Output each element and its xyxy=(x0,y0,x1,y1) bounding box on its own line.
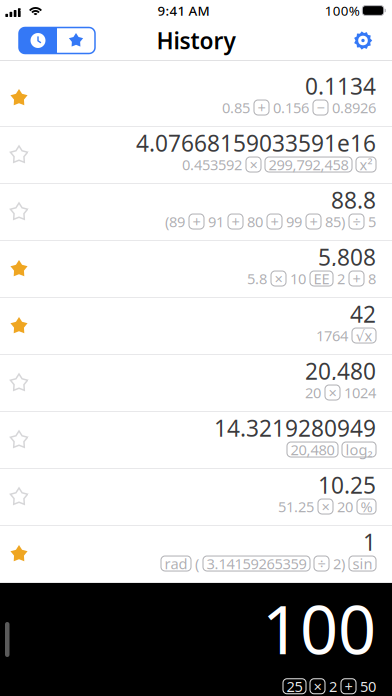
staticText: × xyxy=(313,676,321,696)
staticText: 1024 xyxy=(344,383,376,402)
staticText: (89 xyxy=(165,212,185,231)
staticText: 14.3219280949 xyxy=(214,413,376,443)
staticText: 0.8926 xyxy=(332,98,376,117)
staticText: + xyxy=(192,212,200,231)
button[interactable]: Settings xyxy=(350,27,376,53)
staticText: x² xyxy=(359,155,372,174)
staticText: 20 xyxy=(305,383,321,402)
staticText: 0.85 xyxy=(222,98,250,117)
staticText: 85) xyxy=(325,212,345,231)
staticText: 299,792,458 xyxy=(268,155,348,174)
staticText: sin xyxy=(352,554,372,573)
staticText: × xyxy=(249,155,257,174)
staticText: log₂ xyxy=(345,440,372,459)
button[interactable]: 1 xyxy=(0,526,392,583)
staticText: 91 xyxy=(208,212,224,231)
staticText: ( xyxy=(195,554,199,573)
staticText: ÷ xyxy=(317,554,325,573)
button[interactable]: Favorites xyxy=(57,27,95,53)
staticText: √x xyxy=(355,326,372,345)
staticText: × xyxy=(328,383,336,402)
staticText: 10.25 xyxy=(318,470,376,500)
button[interactable]: 88.8 xyxy=(0,184,392,241)
button[interactable]: 20,480 xyxy=(0,355,392,412)
staticText: 0.156 xyxy=(273,98,309,117)
staticText: ÷ xyxy=(352,212,360,231)
staticText: 42 xyxy=(350,299,376,329)
staticText: 3.14159265359 xyxy=(206,554,306,573)
staticText: + xyxy=(231,212,239,231)
staticText: 20 xyxy=(337,497,353,516)
staticText: 25 xyxy=(286,676,302,696)
staticText: + xyxy=(352,269,360,288)
staticText: 5 xyxy=(368,212,376,231)
staticText: 5.8 xyxy=(247,269,267,288)
staticText: 9:41 AM xyxy=(157,2,209,19)
staticText: 1764 xyxy=(316,326,348,345)
staticText: 0.1134 xyxy=(305,71,376,101)
staticText: 2) xyxy=(333,554,345,573)
staticText: × xyxy=(274,269,282,288)
staticText: 5,808 xyxy=(318,242,376,272)
staticText: 20,480 xyxy=(305,356,376,386)
button[interactable]: 14.3219280949 xyxy=(0,412,392,469)
button[interactable]: History xyxy=(19,27,57,53)
button[interactable]: 0.1134 xyxy=(0,70,392,127)
button[interactable]: 5,808 xyxy=(0,241,392,298)
staticText: 99 xyxy=(286,212,302,231)
staticText: 4.07668159033591e16 xyxy=(136,128,376,158)
button[interactable]: 4.07668159033591e16 xyxy=(0,127,392,184)
staticText: + xyxy=(309,212,317,231)
staticText: 100% xyxy=(325,2,360,19)
staticText: + xyxy=(257,98,265,117)
staticText: rad xyxy=(164,554,187,573)
staticText: 10 xyxy=(290,269,306,288)
staticText: EE xyxy=(313,269,329,288)
staticText: 8 xyxy=(368,269,376,288)
staticText: 1 xyxy=(363,527,376,557)
staticText: 2 xyxy=(329,676,337,696)
staticText: + xyxy=(270,212,278,231)
staticText: 80 xyxy=(247,212,263,231)
staticText: 20,480 xyxy=(290,440,334,459)
staticText: 88.8 xyxy=(331,185,376,215)
staticText: 51.25 xyxy=(278,497,314,516)
staticText: History xyxy=(156,25,235,55)
staticText: + xyxy=(344,676,352,696)
staticText: 0.453592 xyxy=(182,155,242,174)
button[interactable]: 10.25 xyxy=(0,469,392,526)
staticText: × xyxy=(321,497,329,516)
staticText: − xyxy=(316,98,324,117)
staticText: 2 xyxy=(337,269,345,288)
staticText: 100 xyxy=(262,584,376,672)
staticText: 50 xyxy=(360,676,376,696)
button[interactable]: 42 xyxy=(0,298,392,355)
staticText: % xyxy=(360,497,372,516)
